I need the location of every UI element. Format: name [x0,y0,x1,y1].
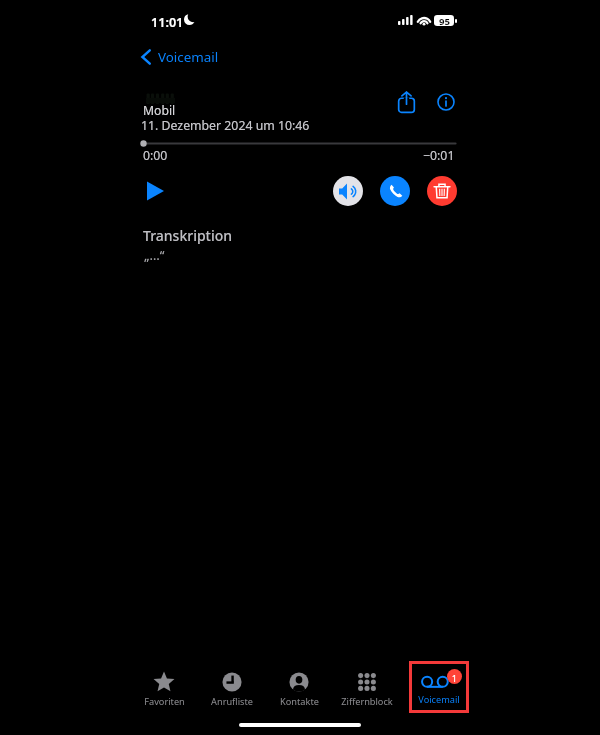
button[interactable]: Ziffernblock [337,671,397,708]
button[interactable]: Teilen [390,85,422,117]
staticText: Mobil [143,102,176,119]
staticText: Transkription [143,226,233,245]
button[interactable]: Anrufen [380,176,410,206]
button[interactable]: Voicemail [139,48,219,66]
button[interactable]: Abspielen [140,176,170,206]
staticText: Favoriten [144,695,185,708]
staticText: Kontakte [280,695,319,708]
button[interactable]: Löschen [427,176,457,206]
staticText: „…“ [144,246,165,264]
staticText: −0:01 [423,147,455,164]
staticText: 11. Dezember 2024 um 10:46 [141,117,310,134]
staticText: Ziffernblock [341,695,393,708]
button[interactable]: Lautsprecher [333,176,363,206]
staticText: 1 [447,672,462,687]
staticText: 0:00 [143,147,168,164]
staticText: 11:01 [151,14,184,31]
button[interactable]: Kontakte [269,671,329,708]
button[interactable]: Voicemail [409,661,469,713]
button[interactable]: Anrufliste [202,671,262,708]
button[interactable]: Favoriten [134,671,194,708]
staticText: Anrufliste [211,695,253,708]
staticText: Voicemail [409,693,469,706]
staticText: 95 [439,15,450,26]
button[interactable]: Info [430,86,462,118]
staticText: Voicemail [158,48,219,66]
